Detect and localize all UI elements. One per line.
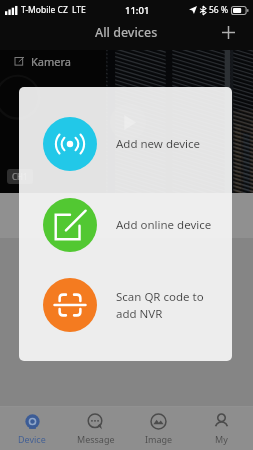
button[interactable]: Device bbox=[0, 407, 64, 450]
staticText: CH1 bbox=[12, 171, 28, 182]
staticText: 11:01 bbox=[125, 4, 150, 17]
staticText: Image bbox=[145, 433, 173, 445]
staticText: Add online device bbox=[116, 217, 212, 233]
button[interactable]: Add new device bbox=[19, 117, 232, 171]
staticText: My bbox=[215, 433, 228, 445]
button[interactable]: Add online device bbox=[19, 198, 232, 252]
staticText: Scan QR code to add NVR bbox=[116, 289, 204, 321]
button[interactable]: Scan QR code to add NVR bbox=[19, 278, 232, 332]
staticText: Add new device bbox=[116, 136, 201, 152]
button[interactable]: Image bbox=[127, 407, 190, 450]
button[interactable]: Message bbox=[64, 407, 127, 450]
staticText: Message bbox=[77, 433, 115, 445]
button[interactable]: Add device bbox=[217, 21, 239, 43]
button[interactable]: My bbox=[190, 407, 253, 450]
staticText: Kamera bbox=[31, 54, 71, 69]
staticText: T-Mobile CZ bbox=[21, 4, 68, 16]
staticText: 56 % bbox=[209, 4, 228, 16]
staticText: All devices bbox=[95, 24, 158, 41]
staticText: Device bbox=[18, 433, 46, 445]
staticText: LTE bbox=[72, 4, 86, 16]
